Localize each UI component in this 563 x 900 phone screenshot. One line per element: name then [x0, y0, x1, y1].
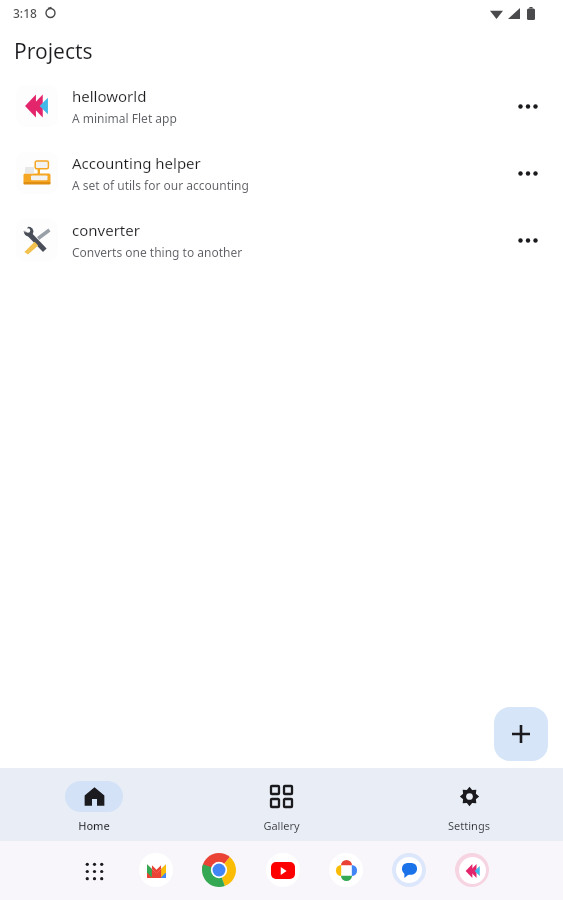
- button[interactable]: All apps: [78, 855, 110, 887]
- button[interactable]: More options: [505, 150, 551, 196]
- staticText: A minimal Flet app: [72, 110, 177, 126]
- button[interactable]: Messages: [392, 853, 426, 887]
- staticText: 3:18: [13, 5, 37, 21]
- button[interactable]: Gallery: [187, 768, 375, 841]
- staticText: Projects: [14, 37, 93, 66]
- button[interactable]: helloworld: [0, 72, 563, 139]
- button[interactable]: More options: [505, 217, 551, 263]
- button[interactable]: Home: [0, 768, 187, 841]
- button[interactable]: Google Photos: [329, 853, 363, 887]
- button[interactable]: Chrome: [202, 853, 236, 887]
- staticText: Gallery: [263, 818, 300, 833]
- staticText: converter: [72, 220, 140, 240]
- staticText: helloworld: [72, 86, 147, 106]
- staticText: Converts one thing to another: [72, 244, 243, 260]
- button[interactable]: YouTube: [266, 853, 300, 887]
- button[interactable]: Accounting helper: [0, 139, 563, 206]
- staticText: Settings: [448, 818, 490, 833]
- button[interactable]: converter: [0, 206, 563, 273]
- staticText: Home: [78, 818, 110, 833]
- button[interactable]: More options: [505, 83, 551, 129]
- button[interactable]: Gmail: [139, 853, 173, 887]
- staticText: A set of utils for our accounting: [72, 177, 249, 193]
- button[interactable]: Flet: [455, 853, 489, 887]
- button[interactable]: Settings: [375, 768, 563, 841]
- staticText: Accounting helper: [72, 153, 201, 173]
- button[interactable]: Add project: [494, 707, 548, 761]
